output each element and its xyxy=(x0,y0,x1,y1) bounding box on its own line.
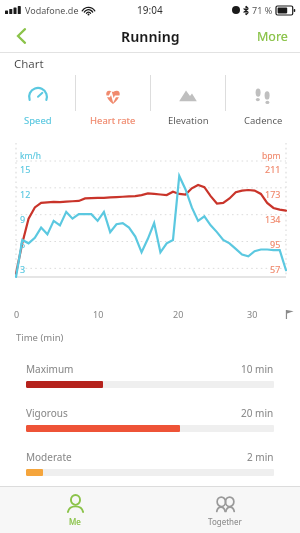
staticText: km/h xyxy=(20,150,41,162)
staticText: Speed xyxy=(24,114,52,127)
staticText: Maximum xyxy=(26,362,74,376)
staticText: 211 xyxy=(265,163,281,175)
button[interactable]: More xyxy=(245,20,300,52)
button[interactable]: Together xyxy=(150,487,300,533)
button[interactable]: Elevation xyxy=(151,75,225,137)
staticText: 12 xyxy=(20,188,31,200)
staticText: 30 xyxy=(247,308,258,320)
staticText: 173 xyxy=(265,188,281,200)
staticText: 71 % xyxy=(252,4,273,16)
button[interactable]: Speed xyxy=(0,75,75,137)
staticText: 95 xyxy=(270,238,281,250)
staticText: Me xyxy=(69,516,81,527)
staticText: Chart xyxy=(14,56,44,72)
staticText: Elevation xyxy=(168,114,209,127)
button[interactable]: Vigorous xyxy=(26,406,274,432)
staticText: Vigorous xyxy=(26,406,68,420)
staticText: 0 xyxy=(14,308,20,320)
staticText: bpm xyxy=(262,150,281,162)
staticText: 19:04 xyxy=(137,3,163,17)
staticText: 20 xyxy=(173,308,184,320)
staticText: 9 xyxy=(20,213,26,225)
staticText: 3 xyxy=(20,263,26,275)
staticText: Together xyxy=(208,516,242,527)
button[interactable]: Me xyxy=(0,487,150,533)
staticText: 10 min xyxy=(241,362,274,376)
staticText: 134 xyxy=(265,213,281,225)
button[interactable]: Maximum xyxy=(26,362,274,388)
staticText: Heart rate xyxy=(90,114,136,127)
staticText: Time (min) xyxy=(16,331,64,344)
button[interactable]: Moderate xyxy=(26,450,274,476)
button[interactable]: Heart rate xyxy=(76,75,150,137)
staticText: 6 xyxy=(20,238,26,250)
staticText: 57 xyxy=(270,263,281,275)
staticText: More xyxy=(257,28,288,45)
staticText: Cadence xyxy=(244,114,283,127)
staticText: Running xyxy=(121,27,180,46)
staticText: Moderate xyxy=(26,450,72,464)
staticText: 15 xyxy=(20,163,31,175)
button[interactable]: Cadence xyxy=(226,75,300,137)
staticText: 2 min xyxy=(247,450,274,464)
staticText: 10 xyxy=(93,308,104,320)
staticText: 20 min xyxy=(241,406,274,420)
staticText: Vodafone.de xyxy=(25,4,79,16)
button[interactable]: Back xyxy=(0,20,42,52)
